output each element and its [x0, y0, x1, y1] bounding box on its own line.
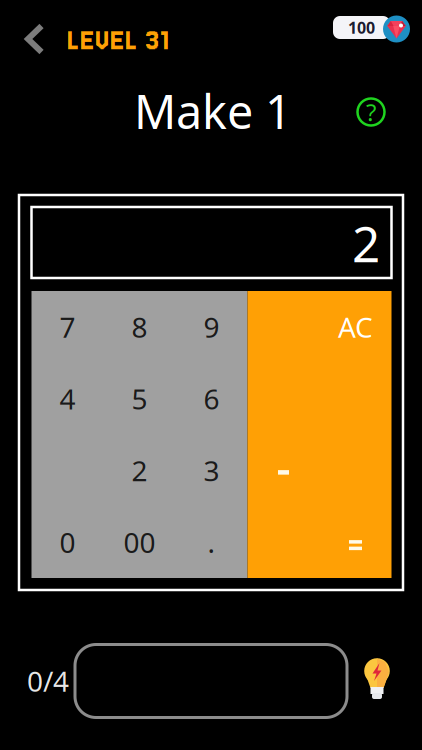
button[interactable]: 00 — [103, 506, 175, 578]
button[interactable]: 7 — [31, 291, 103, 363]
staticText: ? — [366, 96, 376, 128]
staticText: 4 — [59, 380, 75, 417]
staticText: . — [207, 523, 215, 561]
staticText: 3 — [203, 452, 219, 489]
button[interactable] — [319, 434, 391, 506]
button[interactable] — [319, 506, 391, 578]
button[interactable] — [247, 434, 319, 506]
staticText: 100 — [348, 17, 375, 38]
staticText: AC — [338, 308, 373, 345]
button[interactable]: . — [175, 506, 247, 578]
staticText: 9 — [203, 308, 219, 345]
staticText: 8 — [131, 308, 147, 345]
staticText: 2 — [131, 452, 147, 489]
button[interactable]: Gems: 100 — [332, 15, 410, 43]
staticText: 5 — [131, 380, 147, 417]
staticText: 2 — [352, 210, 380, 276]
button[interactable]: 9 — [175, 291, 247, 363]
button[interactable]: 4 — [31, 363, 103, 435]
button[interactable]: Help — [351, 92, 391, 132]
staticText: 6 — [203, 380, 219, 417]
button[interactable]: AC — [319, 291, 391, 363]
button[interactable]: 2 — [103, 434, 175, 506]
staticText: 7 — [59, 308, 75, 345]
button[interactable]: 3 — [175, 434, 247, 506]
staticText: 0/4 — [27, 662, 69, 700]
button[interactable]: 0 — [31, 506, 103, 578]
staticText: 00 — [123, 523, 155, 561]
staticText: Make 1 — [134, 80, 292, 142]
button[interactable] — [319, 363, 391, 435]
staticText: LEVEL 31 — [66, 25, 169, 55]
button[interactable]: 5 — [103, 363, 175, 435]
staticText: 0 — [59, 523, 75, 561]
button[interactable]: 8 — [103, 291, 175, 363]
button[interactable]: Back — [7, 16, 53, 62]
button[interactable]: 6 — [175, 363, 247, 435]
button[interactable]: Hint — [355, 655, 399, 705]
